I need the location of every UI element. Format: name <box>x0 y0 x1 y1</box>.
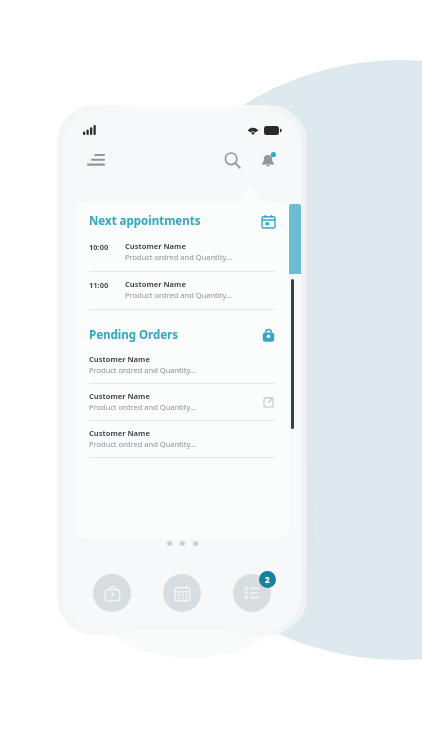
button[interactable]: 11:00 <box>89 279 275 300</box>
button[interactable]: Edit order <box>263 396 275 408</box>
staticText: Customer Name <box>89 354 150 364</box>
staticText: Next appointments <box>89 213 201 229</box>
button[interactable]: Notifications <box>253 145 283 175</box>
staticText: Customer Name <box>89 391 150 401</box>
staticText: 10:00 <box>89 242 109 252</box>
staticText: Product ordred and Quantity... <box>89 439 197 449</box>
button[interactable]: Next appointments <box>89 213 275 229</box>
staticText: Pending Orders <box>89 327 178 343</box>
button[interactable]: Pending Orders <box>89 327 275 343</box>
button[interactable]: Task list <box>233 574 271 612</box>
button[interactable]: Orders <box>93 574 131 612</box>
staticText: Customer Name <box>125 241 186 251</box>
staticText: Product ordred and Quantity... <box>89 365 197 375</box>
button[interactable]: 10:00 <box>89 241 275 262</box>
staticText: Customer Name <box>125 279 186 289</box>
staticText: Product ordred and Quantity... <box>125 252 233 262</box>
staticText: Product ordred and Quantity... <box>89 402 197 412</box>
staticText: 2 <box>265 574 270 585</box>
button[interactable]: Menu <box>81 145 111 175</box>
staticText: Customer Name <box>89 428 150 438</box>
button[interactable]: Customer Name <box>89 354 275 375</box>
button[interactable]: Calendar <box>163 574 201 612</box>
button[interactable]: Search <box>217 145 247 175</box>
button[interactable]: Customer Name <box>89 391 275 412</box>
button[interactable]: Customer Name <box>89 428 275 449</box>
staticText: 11:00 <box>89 280 109 290</box>
staticText: Product ordred and Quantity... <box>125 290 233 300</box>
